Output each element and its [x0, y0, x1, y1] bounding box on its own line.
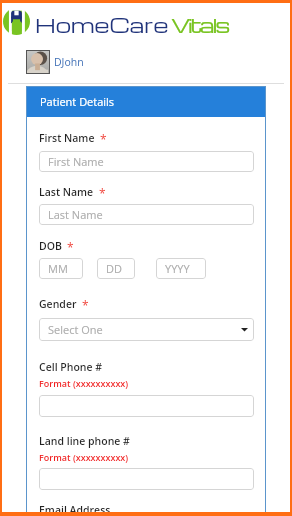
button[interactable]: Last Name [39, 204, 254, 225]
staticText: Last Name [39, 185, 94, 199]
button[interactable] [39, 395, 254, 417]
staticText: DOB [39, 239, 62, 253]
staticText: Patient Details [40, 94, 115, 109]
staticText: Cell Phone # [39, 360, 103, 374]
staticText: Select One [48, 322, 103, 337]
staticText: First Name [39, 131, 95, 145]
staticText: DJohn [54, 55, 84, 69]
button[interactable]: MM [39, 258, 83, 279]
staticText: DD [106, 261, 122, 276]
staticText: Vitals [171, 10, 229, 38]
staticText: * [100, 131, 107, 147]
staticText: Last Name [48, 207, 103, 222]
button[interactable] [39, 468, 254, 490]
staticText: MM [48, 261, 68, 276]
button[interactable]: DD [97, 258, 135, 279]
staticText: * [99, 185, 106, 201]
button[interactable]: YYYY [156, 258, 206, 279]
staticText: Gender [39, 297, 77, 311]
staticText: First Name [48, 154, 104, 169]
button[interactable]: Select One [39, 318, 254, 341]
button[interactable]: DJohn [26, 50, 84, 74]
staticText: Format (xxxxxxxxxx) [39, 451, 129, 463]
other: HomeCare Vitals logo [3, 8, 30, 35]
button[interactable]: Patient Details [26, 86, 266, 117]
staticText: * [82, 297, 89, 313]
staticText: Email Address [39, 503, 111, 516]
staticText: YYYY [165, 261, 190, 276]
staticText: Format (xxxxxxxxxx) [39, 377, 129, 389]
staticText: * [67, 239, 74, 255]
staticText: HomeCare [35, 10, 169, 38]
button[interactable]: First Name [39, 151, 254, 172]
staticText: Land line phone # [39, 434, 130, 448]
